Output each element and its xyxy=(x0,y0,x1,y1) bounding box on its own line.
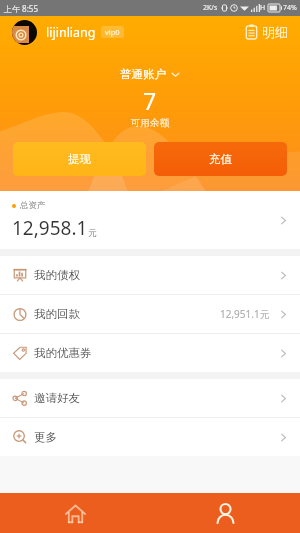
staticText: 明细 xyxy=(262,24,288,40)
staticText: 充值 xyxy=(209,152,232,166)
button[interactable]: 总资产 xyxy=(0,191,300,249)
staticText: 12,951.1元 xyxy=(220,307,270,321)
staticText: 上午 8:55 xyxy=(4,3,38,14)
staticText: 7 xyxy=(143,85,157,116)
button[interactable]: 我的回款 xyxy=(0,295,300,333)
staticText: 2K/s xyxy=(203,3,218,13)
staticText: vip0 xyxy=(105,27,120,37)
button[interactable]: 更多 xyxy=(0,418,300,456)
button[interactable]: 我的债权 xyxy=(0,256,300,294)
staticText: 提现 xyxy=(68,152,91,166)
staticText: 12,958.1 xyxy=(12,215,88,241)
button[interactable]: 邀请好友 xyxy=(0,379,300,417)
staticText: 普通账户 xyxy=(120,67,166,81)
staticText: 总资产 xyxy=(20,200,46,211)
staticText: 我的债权 xyxy=(34,268,80,282)
staticText: 元 xyxy=(88,228,97,239)
staticText: 邀请好友 xyxy=(34,391,80,405)
staticText: H xyxy=(260,3,266,13)
button[interactable]: 我的优惠券 xyxy=(0,334,300,372)
staticText: lijinliang xyxy=(46,24,96,41)
button[interactable]: 普通账户 xyxy=(0,67,300,81)
staticText: 可用余额 xyxy=(131,117,169,129)
staticText: 更多 xyxy=(34,430,57,444)
staticText: 74% xyxy=(283,3,297,13)
button[interactable]: Profile xyxy=(150,493,300,533)
staticText: 我的回款 xyxy=(34,307,80,321)
staticText: 我的优惠券 xyxy=(34,346,92,360)
button[interactable]: 提现 xyxy=(13,142,146,176)
button[interactable]: 明细 xyxy=(241,21,292,43)
button[interactable]: 充值 xyxy=(154,142,287,176)
button[interactable]: Home xyxy=(0,493,150,533)
